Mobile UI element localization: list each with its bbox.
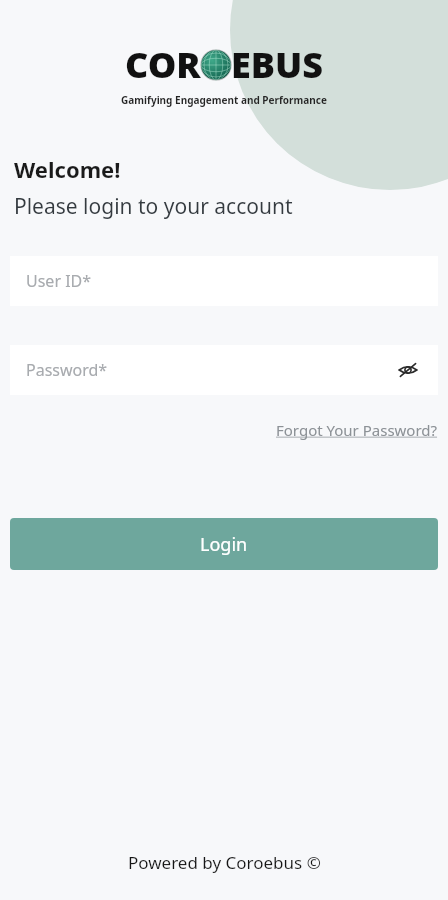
staticText: Welcome! — [14, 154, 121, 184]
button[interactable]: Password* — [10, 345, 438, 395]
staticText: Powered by Coroebus © — [128, 851, 321, 874]
staticText: Password* — [26, 359, 108, 381]
button[interactable]: Forgot Your Password? — [266, 416, 448, 444]
button[interactable]: Show password — [390, 352, 426, 388]
staticText: Forgot Your Password? — [276, 420, 438, 440]
staticText: EBUS — [231, 40, 324, 89]
staticText: Login — [200, 532, 248, 557]
button[interactable]: User ID* — [10, 256, 438, 306]
staticText: User ID* — [26, 270, 92, 292]
staticText: Please login to your account — [14, 192, 293, 221]
button[interactable]: Login — [10, 518, 438, 570]
staticText: COR — [125, 40, 201, 89]
staticText: Gamifying Engagement and Performance — [0, 93, 448, 107]
